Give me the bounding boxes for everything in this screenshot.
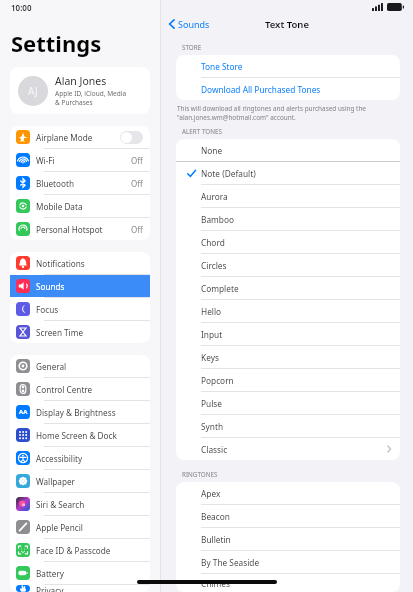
staticText: General	[36, 361, 143, 372]
staticText: Display & Brightness	[36, 407, 143, 418]
button[interactable]: Face ID & Passcode	[10, 539, 150, 561]
staticText: AA	[19, 408, 28, 416]
staticText: & Purchases	[55, 98, 93, 107]
staticText: Sounds	[36, 281, 143, 292]
button[interactable]: Popcorn	[176, 369, 400, 391]
staticText: Wallpaper	[36, 476, 143, 487]
button[interactable]: Sounds	[167, 16, 212, 32]
staticText: RINGTONES	[182, 470, 218, 479]
staticText: Alan Jones	[55, 74, 107, 88]
button[interactable]: Hello	[176, 300, 400, 322]
staticText: Home Screen & Dock	[36, 430, 143, 441]
button[interactable]: Chord	[176, 231, 400, 253]
staticText: Privacy	[36, 585, 143, 592]
button[interactable]: Synth	[176, 415, 400, 437]
button[interactable]: Notifications	[10, 252, 150, 274]
button[interactable]: Sounds	[10, 275, 150, 297]
staticText: Bamboo	[201, 214, 391, 225]
button[interactable]: Mobile Data	[10, 195, 150, 217]
staticText: Notifications	[36, 258, 143, 269]
staticText: Airplane Mode	[36, 132, 120, 143]
staticText: Settings	[11, 28, 102, 58]
staticText: Off	[131, 224, 143, 235]
button[interactable]: Note (Default)	[176, 162, 400, 184]
staticText: Bluetooth	[36, 178, 131, 189]
button[interactable]: AJ	[10, 67, 150, 114]
button[interactable]: None	[176, 139, 400, 161]
button[interactable]: By The Seaside	[176, 551, 400, 573]
staticText: "alan.jones.wm@hotmail.com" account.	[177, 113, 296, 122]
button[interactable]: Wi-Fi	[10, 149, 150, 171]
staticText: Off	[131, 155, 143, 166]
button[interactable]: Tone Store	[176, 55, 400, 77]
staticText: Classic	[201, 444, 387, 455]
staticText: Accessibility	[36, 453, 143, 464]
button[interactable]: Wallpaper	[10, 470, 150, 492]
button[interactable]: Siri & Search	[10, 493, 150, 515]
button[interactable]: Keys	[176, 346, 400, 368]
button[interactable]: Complete	[176, 277, 400, 299]
staticText: Control Centre	[36, 384, 143, 395]
button[interactable]: Apex	[176, 482, 400, 504]
staticText: Hello	[201, 306, 391, 317]
staticText: Beacon	[201, 511, 391, 522]
staticText: Focus	[36, 304, 143, 315]
button[interactable]: Circles	[176, 254, 400, 276]
staticText: Sounds	[178, 18, 210, 30]
staticText: None	[201, 145, 391, 156]
button[interactable]: Accessibility	[10, 447, 150, 469]
staticText: Text Tone	[265, 18, 309, 31]
staticText: Download All Purchased Tones	[201, 84, 391, 95]
staticText: Wi-Fi	[36, 155, 131, 166]
staticText: Synth	[201, 421, 391, 432]
button[interactable]: Home Screen & Dock	[10, 424, 150, 446]
staticText: Chord	[201, 237, 391, 248]
button[interactable]: Chimes	[176, 574, 400, 592]
button[interactable]: Bluetooth	[10, 172, 150, 194]
staticText: Siri & Search	[36, 499, 143, 510]
staticText: Tone Store	[201, 61, 391, 72]
staticText: 10:00	[11, 2, 32, 13]
button[interactable]: Battery	[10, 562, 150, 584]
button[interactable]: Classic	[176, 438, 400, 460]
staticText: Complete	[201, 283, 391, 294]
staticText: Off	[131, 178, 143, 189]
button[interactable]: AA	[10, 401, 150, 423]
staticText: STORE	[182, 43, 202, 52]
staticText: Chimes	[201, 578, 391, 589]
staticText: Battery	[36, 568, 143, 579]
button[interactable]: Privacy	[10, 585, 150, 592]
button[interactable]: Aurora	[176, 185, 400, 207]
staticText: Apex	[201, 488, 391, 499]
button[interactable]: General	[10, 355, 150, 377]
staticText: Aurora	[201, 191, 391, 202]
staticText: ALERT TONES	[182, 127, 222, 136]
staticText: Screen Time	[36, 327, 143, 338]
button[interactable]: Apple Pencil	[10, 516, 150, 538]
staticText: Apple ID, iCloud, Media	[55, 89, 127, 98]
button[interactable]: Bulletin	[176, 528, 400, 550]
staticText: Keys	[201, 352, 391, 363]
staticText: Face ID & Passcode	[36, 545, 143, 556]
staticText: Popcorn	[201, 375, 391, 386]
staticText: Pulse	[201, 398, 391, 409]
button[interactable]: Pulse	[176, 392, 400, 414]
staticText: Circles	[201, 260, 391, 271]
button[interactable]: Bamboo	[176, 208, 400, 230]
staticText: Mobile Data	[36, 201, 143, 212]
staticText: AJ	[28, 84, 38, 98]
staticText: Apple Pencil	[36, 522, 143, 533]
staticText: Bulletin	[201, 534, 391, 545]
button[interactable]: Input	[176, 323, 400, 345]
button[interactable]: Beacon	[176, 505, 400, 527]
staticText: Personal Hotspot	[36, 224, 131, 235]
staticText: This will download all ringtones and ale…	[177, 104, 366, 113]
button[interactable]: Airplane Mode toggle	[120, 131, 143, 144]
button[interactable]: Focus	[10, 298, 150, 320]
button[interactable]: Personal Hotspot	[10, 218, 150, 240]
button[interactable]: Airplane Mode	[10, 126, 150, 148]
staticText: Note (Default)	[201, 168, 391, 179]
button[interactable]: Control Centre	[10, 378, 150, 400]
button[interactable]: Download All Purchased Tones	[176, 78, 400, 100]
button[interactable]: Screen Time	[10, 321, 150, 343]
